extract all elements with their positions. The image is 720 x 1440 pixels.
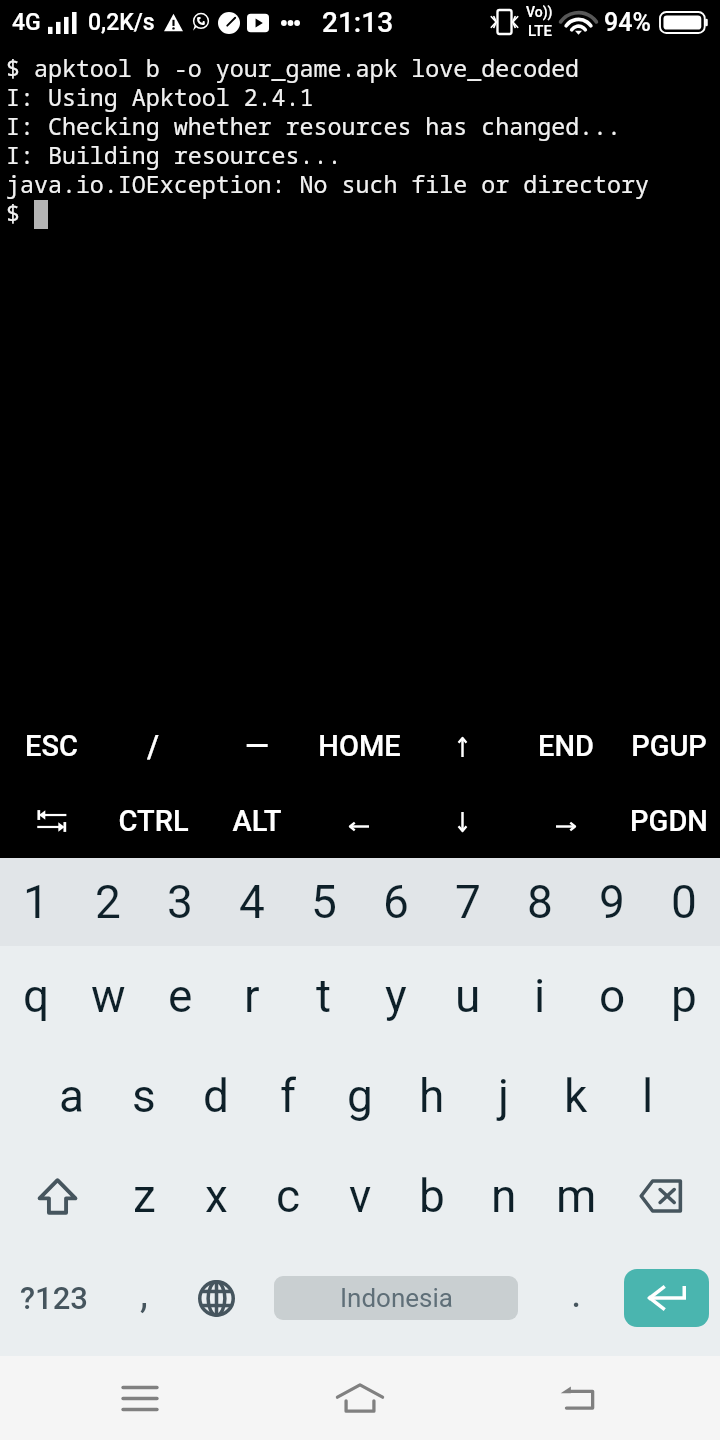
staticText: v xyxy=(349,1169,372,1223)
button[interactable]: j xyxy=(468,1046,540,1146)
staticText: 8 xyxy=(527,875,553,929)
staticText: u xyxy=(455,969,481,1023)
staticText: y xyxy=(385,969,407,1023)
staticText: 2 xyxy=(95,875,121,929)
button[interactable]: — xyxy=(205,709,308,783)
button[interactable]: n xyxy=(468,1146,540,1246)
button[interactable]: PGUP xyxy=(617,709,720,783)
button[interactable]: Home xyxy=(290,1356,430,1440)
button[interactable]: 4 xyxy=(216,858,288,946)
button[interactable]: k xyxy=(540,1046,612,1146)
other: Tab xyxy=(36,808,67,834)
staticText: t xyxy=(316,969,332,1023)
button[interactable]: m xyxy=(540,1146,612,1246)
other: Right xyxy=(556,821,575,832)
staticText: 0,2K/s xyxy=(88,9,155,36)
button[interactable]: Enter xyxy=(612,1246,720,1356)
button[interactable]: c xyxy=(252,1146,324,1246)
button[interactable]: w xyxy=(72,946,144,1046)
button[interactable]: Indonesia xyxy=(252,1246,540,1356)
button[interactable]: END xyxy=(514,709,617,783)
staticText: 1 xyxy=(23,875,49,929)
button[interactable]: , xyxy=(108,1246,180,1356)
button[interactable]: CTRL xyxy=(102,783,205,858)
staticText: PGDN xyxy=(630,804,708,838)
button[interactable]: Tab xyxy=(0,783,102,858)
button[interactable]: t xyxy=(288,946,360,1046)
staticText: e xyxy=(168,969,193,1023)
button[interactable]: 9 xyxy=(576,858,648,946)
staticText: $ apktool b -o your_game.apk love_decode… xyxy=(6,52,649,228)
button[interactable]: Left xyxy=(308,783,411,858)
button[interactable]: Back xyxy=(507,1356,647,1440)
button[interactable]: . xyxy=(540,1246,612,1356)
staticText: 5 xyxy=(311,875,337,929)
staticText: 7 xyxy=(455,875,481,929)
button[interactable]: p xyxy=(648,946,720,1046)
button[interactable]: o xyxy=(576,946,648,1046)
staticText: , xyxy=(140,1270,148,1317)
button[interactable]: y xyxy=(360,946,432,1046)
button[interactable]: r xyxy=(216,946,288,1046)
button[interactable]: h xyxy=(396,1046,468,1146)
staticText: w xyxy=(91,969,126,1023)
button[interactable]: Right xyxy=(514,783,617,858)
button[interactable]: z xyxy=(108,1146,180,1246)
button[interactable]: Recent apps xyxy=(70,1356,210,1440)
button[interactable]: v xyxy=(324,1146,396,1246)
other: Left xyxy=(350,821,369,832)
button[interactable]: x xyxy=(180,1146,252,1246)
button[interactable]: e xyxy=(144,946,216,1046)
button[interactable]: 7 xyxy=(432,858,504,946)
button[interactable]: 3 xyxy=(144,858,216,946)
button[interactable]: 5 xyxy=(288,858,360,946)
staticText: 21:13 xyxy=(322,6,394,39)
button[interactable]: s xyxy=(108,1046,180,1146)
staticText: l xyxy=(642,1069,654,1123)
button[interactable]: 6 xyxy=(360,858,432,946)
staticText: 9 xyxy=(599,875,625,929)
button[interactable]: Change language xyxy=(180,1246,252,1356)
staticText: ?123 xyxy=(20,1280,88,1316)
staticText: b xyxy=(419,1169,445,1223)
button[interactable]: Shift xyxy=(0,1146,108,1246)
button[interactable]: HOME xyxy=(308,709,411,783)
button[interactable]: PGDN xyxy=(617,783,720,858)
staticText: f xyxy=(280,1069,296,1123)
staticText: CTRL xyxy=(118,804,189,838)
staticText: 94% xyxy=(604,8,651,37)
button[interactable]: Up xyxy=(411,709,514,783)
button[interactable]: 2 xyxy=(72,858,144,946)
button[interactable]: ESC xyxy=(0,709,102,783)
button[interactable]: 8 xyxy=(504,858,576,946)
staticText: 4 xyxy=(239,875,265,929)
staticText: c xyxy=(276,1169,301,1223)
staticText: j xyxy=(498,1069,510,1123)
staticText: r xyxy=(244,969,260,1023)
staticText: a xyxy=(59,1069,85,1123)
button[interactable]: Backspace xyxy=(612,1146,720,1246)
staticText: END xyxy=(538,729,594,763)
button[interactable]: ALT xyxy=(205,783,308,858)
button[interactable]: l xyxy=(612,1046,684,1146)
button[interactable]: / xyxy=(102,709,205,783)
staticText: x xyxy=(205,1169,228,1223)
button[interactable]: b xyxy=(396,1146,468,1246)
button[interactable]: i xyxy=(504,946,576,1046)
button[interactable]: 1 xyxy=(0,858,72,946)
button[interactable]: f xyxy=(252,1046,324,1146)
button[interactable]: Down xyxy=(411,783,514,858)
button[interactable]: q xyxy=(0,946,72,1046)
staticText: h xyxy=(419,1069,445,1123)
button[interactable]: a xyxy=(36,1046,108,1146)
button[interactable]: u xyxy=(432,946,504,1046)
button[interactable]: g xyxy=(324,1046,396,1146)
staticText: 0 xyxy=(671,875,697,929)
staticText: Indonesia xyxy=(340,1283,453,1313)
button[interactable]: d xyxy=(180,1046,252,1146)
button[interactable]: ?123 xyxy=(0,1246,108,1356)
staticText: / xyxy=(147,728,160,764)
button[interactable]: 0 xyxy=(648,858,720,946)
staticText: i xyxy=(534,969,546,1023)
staticText: q xyxy=(23,969,50,1023)
